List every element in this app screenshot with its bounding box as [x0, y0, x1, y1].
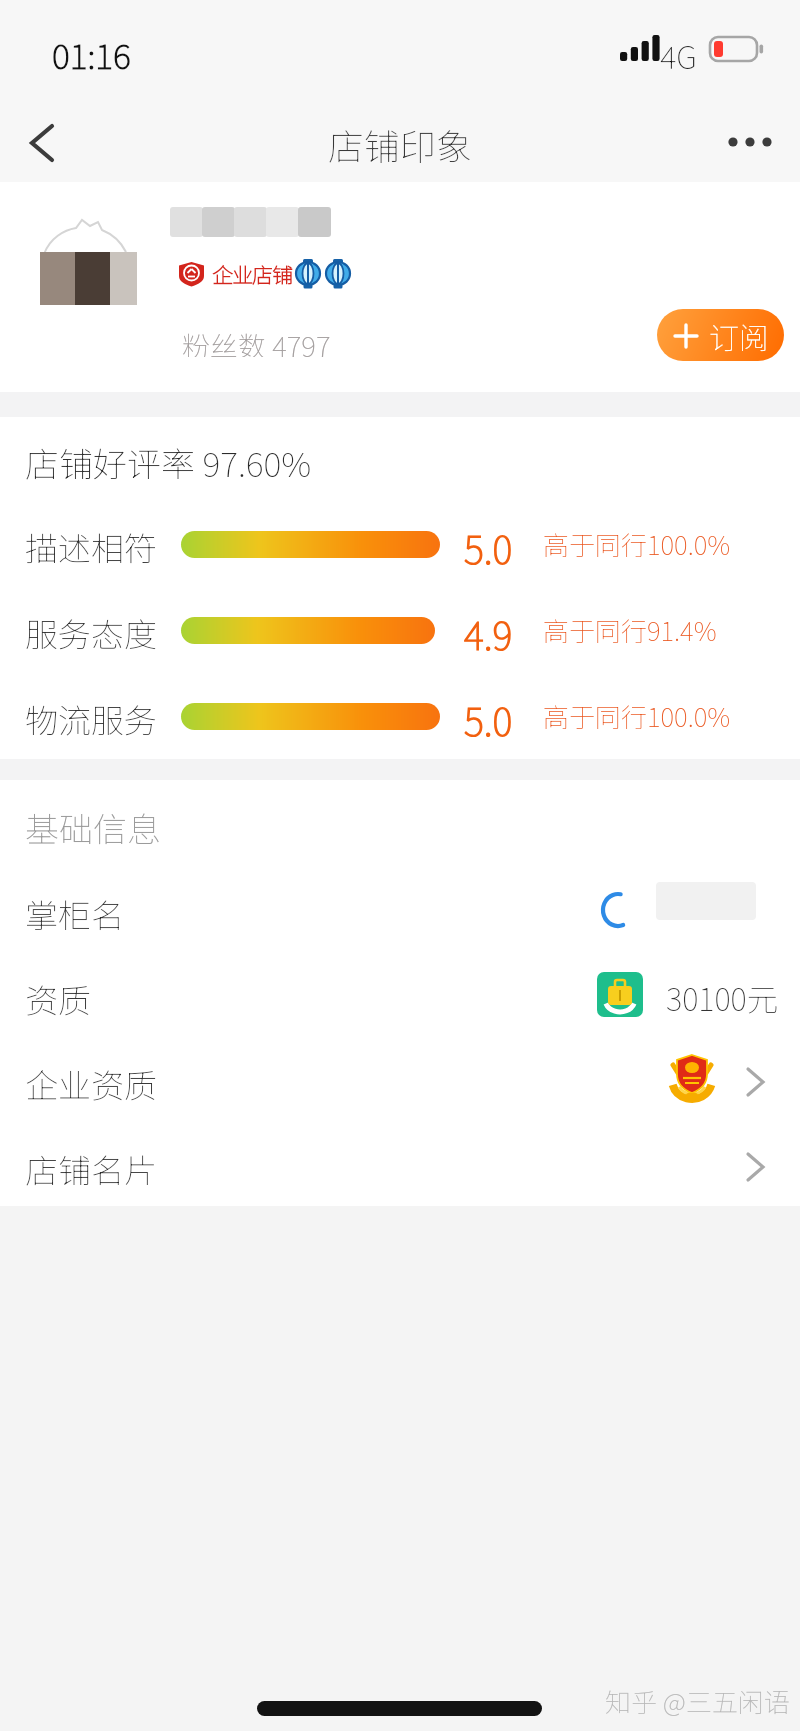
staticText: 高于同行100.0%: [543, 697, 731, 735]
staticText: 知乎 @三五闲语: [605, 1682, 790, 1720]
button[interactable]: 企业资质: [0, 1048, 800, 1116]
staticText: 描述相符: [25, 523, 157, 567]
staticText: 30100元: [666, 975, 778, 1019]
staticText: 店铺好评率 97.60%: [25, 438, 312, 482]
staticText: 企业资质: [25, 1060, 157, 1104]
staticText: 订阅: [709, 314, 769, 357]
button[interactable]: 店铺名片: [0, 1133, 800, 1201]
button[interactable]: 资质: [0, 963, 800, 1031]
staticText: 01:16: [52, 30, 131, 74]
staticText: 店铺名片: [25, 1145, 157, 1189]
staticText: 掌柜名: [25, 890, 124, 934]
staticText: 服务态度: [25, 609, 157, 653]
staticText: 高于同行100.0%: [543, 525, 731, 563]
button[interactable]: 企业店铺: [175, 255, 375, 295]
staticText: 4.9: [464, 606, 513, 652]
staticText: 物流服务: [25, 695, 157, 739]
button[interactable]: 订阅: [657, 309, 784, 361]
button[interactable]: [14, 116, 70, 172]
staticText: 资质: [25, 975, 91, 1019]
staticText: 4G: [660, 33, 697, 69]
staticText: 5.0: [464, 520, 513, 566]
button[interactable]: [722, 118, 782, 166]
staticText: 5.0: [464, 692, 513, 738]
staticText: 高于同行91.4%: [543, 611, 717, 649]
staticText: 企业店铺: [212, 259, 292, 289]
staticText: 基础信息: [25, 803, 161, 847]
staticText: 粉丝数 4797: [182, 325, 331, 357]
staticText: 店铺印象: [328, 118, 473, 166]
button[interactable]: 掌柜名: [0, 878, 800, 946]
